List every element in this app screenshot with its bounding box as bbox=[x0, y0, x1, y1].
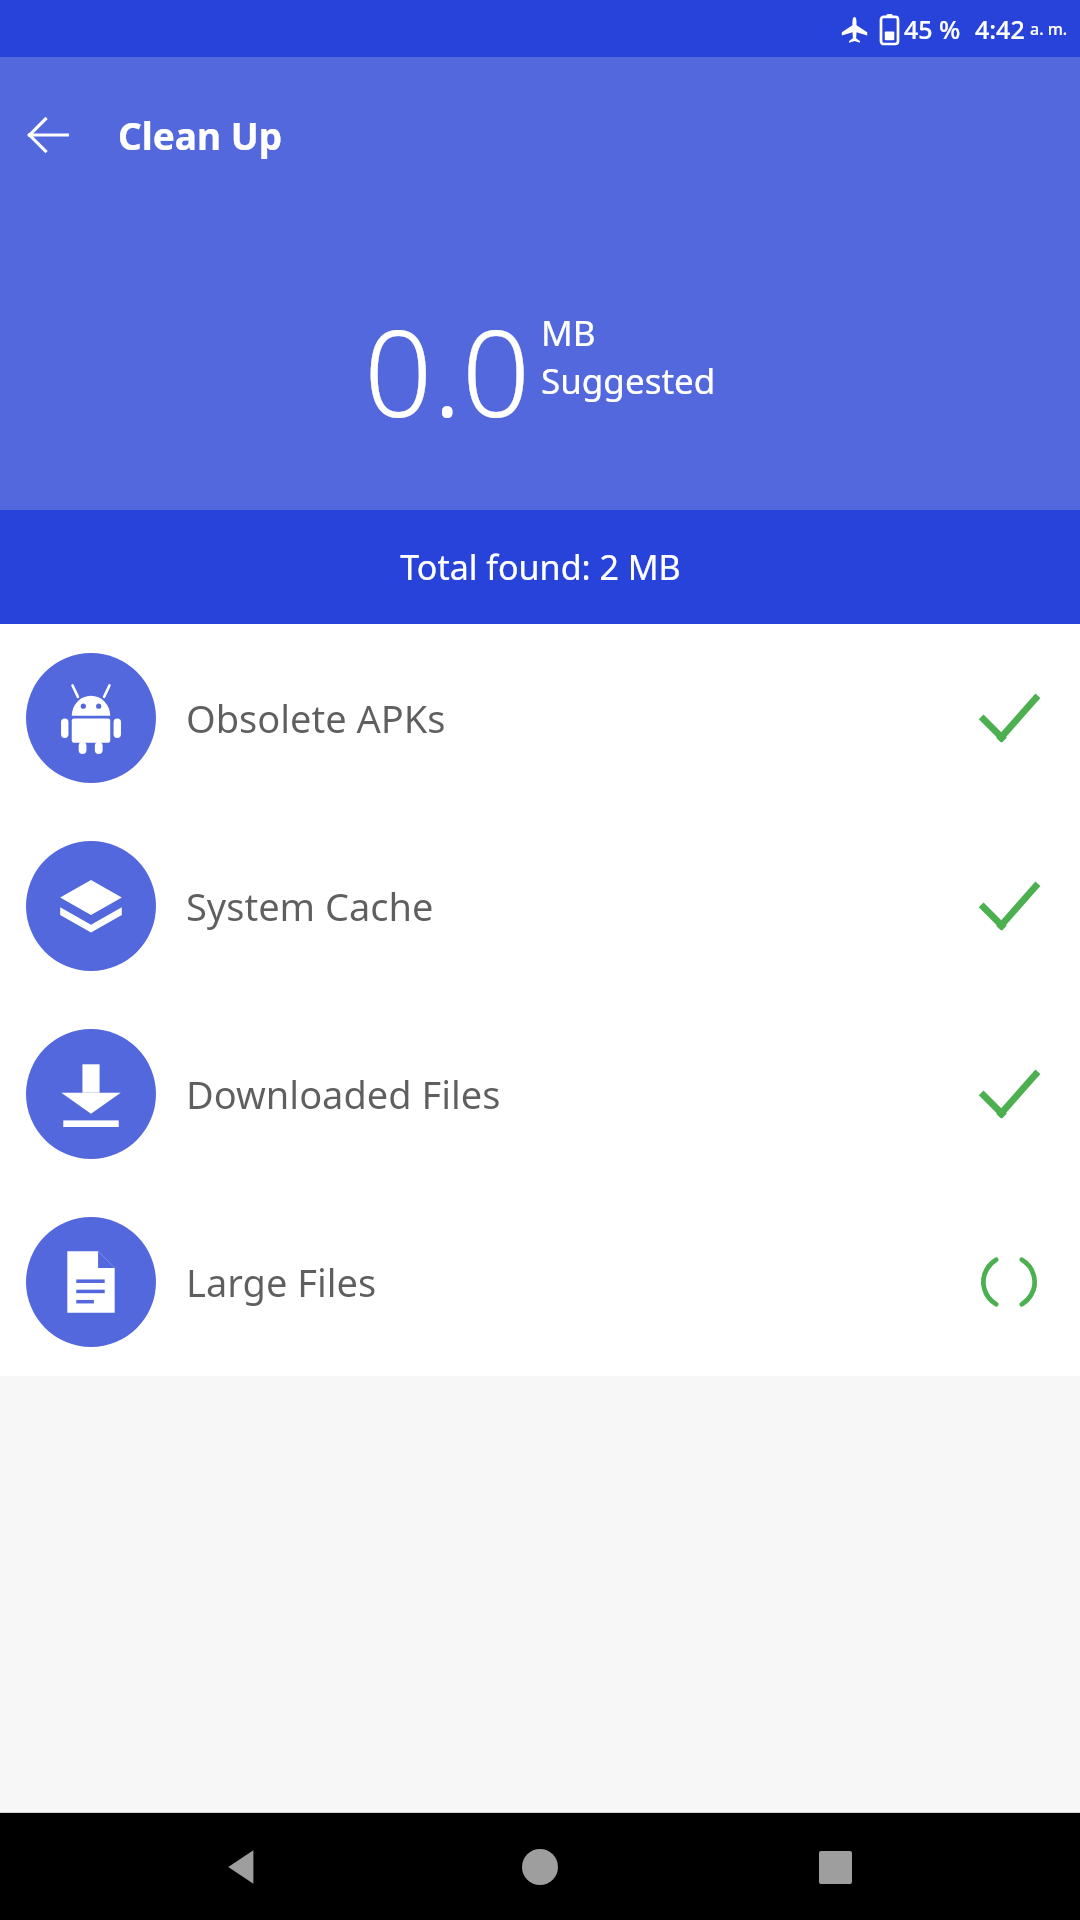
button[interactable]: Large Files bbox=[0, 1188, 1080, 1376]
staticText: MB bbox=[541, 309, 596, 357]
button[interactable]: System Cache bbox=[0, 812, 1080, 1000]
button[interactable]: Recent apps bbox=[785, 1817, 885, 1917]
staticText: 4:42 bbox=[975, 12, 1025, 46]
other: Scanning bbox=[981, 1254, 1037, 1310]
other: Scanned bbox=[980, 689, 1038, 747]
button[interactable]: Downloaded Files bbox=[0, 1000, 1080, 1188]
other: Battery 45 percent bbox=[881, 14, 898, 44]
staticText: System Cache bbox=[186, 880, 972, 932]
button[interactable]: Obsolete APKs bbox=[0, 624, 1080, 812]
staticText: 45 % bbox=[904, 12, 961, 46]
staticText: Clean Up bbox=[118, 110, 283, 160]
other: Scanned bbox=[980, 1065, 1038, 1123]
button[interactable]: Back bbox=[195, 1817, 295, 1917]
staticText: Downloaded Files bbox=[186, 1068, 972, 1120]
staticText: a. m. bbox=[1030, 18, 1068, 40]
staticText: Suggested bbox=[541, 357, 716, 405]
button[interactable]: Back bbox=[0, 87, 96, 183]
other: Airplane mode bbox=[841, 16, 868, 43]
staticText: 0.0 bbox=[364, 289, 531, 452]
staticText: Obsolete APKs bbox=[186, 692, 972, 744]
staticText: Total found: 2 MB bbox=[400, 544, 681, 590]
button[interactable]: Home bbox=[490, 1817, 590, 1917]
staticText: Large Files bbox=[186, 1256, 972, 1308]
other: Scanned bbox=[980, 877, 1038, 935]
